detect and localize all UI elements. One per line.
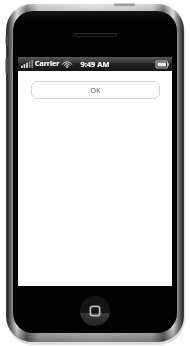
staticText: Carrier — [35, 59, 60, 69]
button[interactable]: Home — [80, 296, 110, 326]
button[interactable]: OK — [31, 81, 160, 99]
staticText: OK — [90, 85, 101, 95]
staticText: 9:49 AM — [80, 59, 110, 69]
